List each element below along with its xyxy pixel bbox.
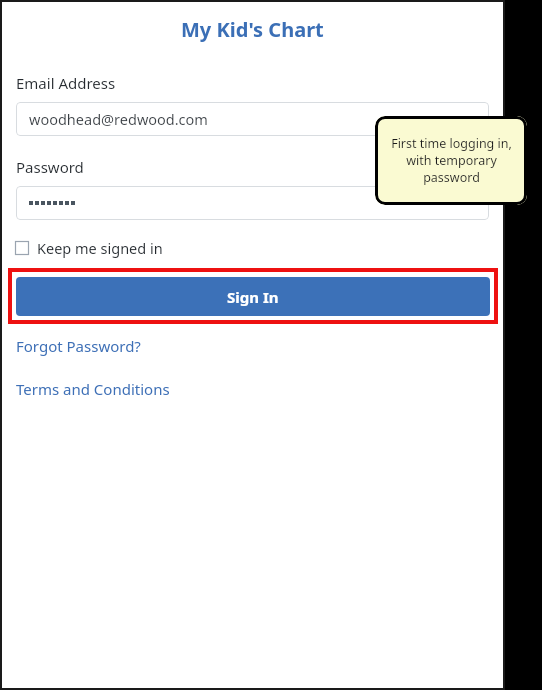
staticText: My Kid's Chart [181, 16, 324, 43]
staticText: Password [16, 157, 84, 177]
staticText: First time logging in, with temporary pa… [391, 135, 512, 186]
staticText: Keep me signed in [37, 238, 163, 258]
staticText: Email Address [16, 73, 116, 93]
button[interactable]: Forgot Password? [16, 336, 141, 356]
staticText: Forgot Password? [16, 336, 141, 356]
staticText: woodhead@redwood.com [29, 109, 208, 129]
button[interactable]: Keep me signed in [15, 238, 163, 258]
other: Hint: First time logging in, with tempor… [375, 116, 527, 205]
button[interactable] [16, 186, 489, 220]
button[interactable]: Terms and Conditions [16, 379, 170, 399]
staticText: Terms and Conditions [16, 379, 170, 399]
button[interactable]: woodhead@redwood.com [16, 102, 489, 136]
button[interactable]: Sign In [16, 277, 490, 316]
staticText: Sign In [227, 287, 279, 307]
